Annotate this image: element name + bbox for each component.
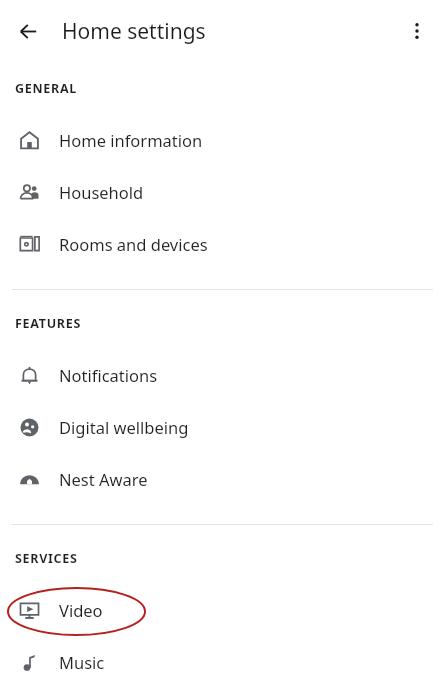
staticText: Digital wellbeing xyxy=(59,416,189,438)
staticText: Rooms and devices xyxy=(59,233,208,255)
staticText: Household xyxy=(59,181,144,203)
staticText: SERVICES xyxy=(15,550,78,567)
button[interactable]: Nest Aware xyxy=(0,453,445,505)
staticText: Music xyxy=(59,651,105,673)
button[interactable]: Video xyxy=(0,584,445,636)
button[interactable]: Household xyxy=(0,166,445,218)
button[interactable]: Notifications xyxy=(0,349,445,401)
button[interactable]: Back xyxy=(8,11,48,51)
button[interactable]: More options xyxy=(397,11,437,51)
staticText: Home settings xyxy=(62,17,206,46)
button[interactable]: Rooms and devices xyxy=(0,218,445,270)
staticText: Nest Aware xyxy=(59,468,148,490)
button[interactable]: Digital wellbeing xyxy=(0,401,445,453)
button[interactable]: Music xyxy=(0,636,445,688)
staticText: Video xyxy=(59,599,103,621)
staticText: FEATURES xyxy=(15,315,81,332)
button[interactable]: Home information xyxy=(0,114,445,166)
staticText: Notifications xyxy=(59,364,158,386)
staticText: Home information xyxy=(59,129,203,151)
staticText: GENERAL xyxy=(15,80,77,97)
